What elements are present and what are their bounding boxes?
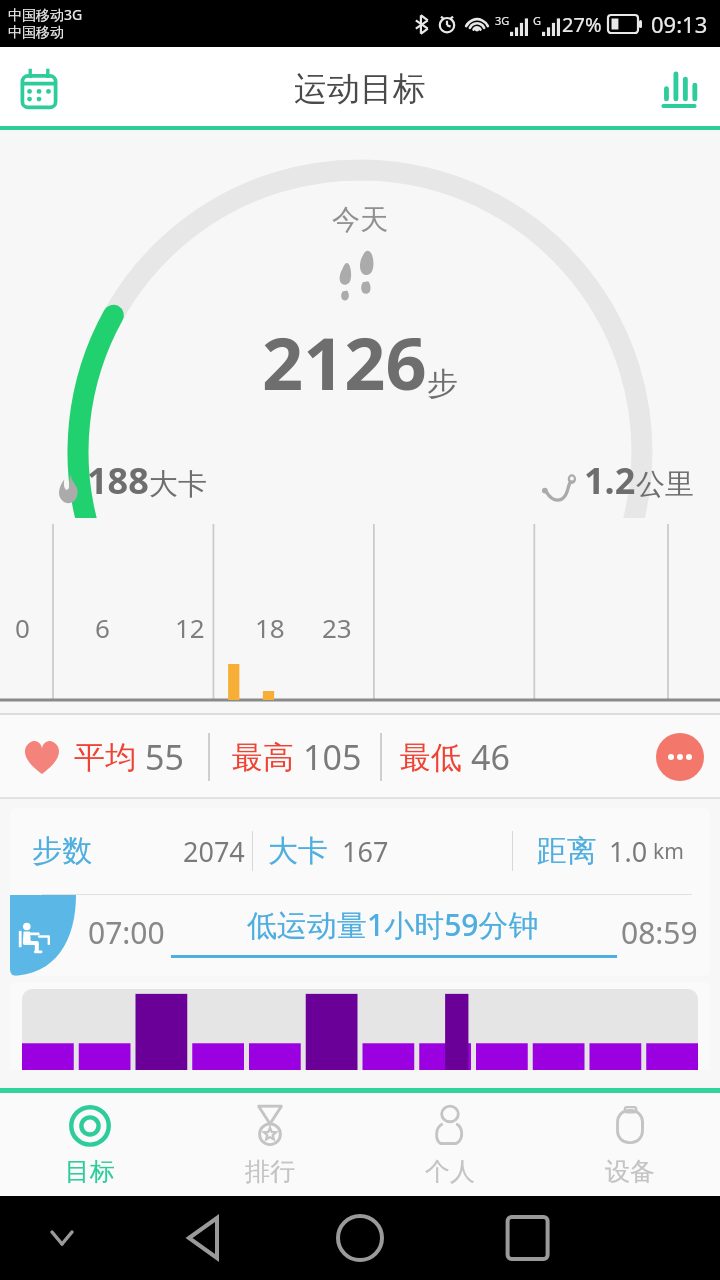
button[interactable]: More options [656,733,704,781]
staticText: 09:13 [651,9,708,39]
staticText: 105 [303,734,362,780]
staticText: 1.0 [609,833,648,870]
button[interactable]: 个人 [360,1093,540,1196]
staticText: 27% [562,11,602,38]
staticText: 188 [87,456,149,505]
button[interactable] [10,982,710,1070]
staticText: 2074 [183,833,245,870]
staticText: 08:59 [621,912,698,953]
staticText: 中国移动3G [8,5,83,24]
staticText: 平均 [74,738,136,777]
button[interactable]: Statistics [648,58,710,120]
staticText: 2126 [262,313,427,411]
staticText: 07:00 [88,912,165,953]
staticText: 18 [255,610,285,645]
staticText: 公里 [636,466,694,503]
staticText: 大卡 [268,832,328,870]
staticText: 46 [471,734,510,780]
staticText: 3G [495,13,510,28]
staticText: 设备 [605,1156,655,1187]
staticText: 目标 [65,1156,115,1187]
staticText: 1.2 [584,456,636,505]
staticText: 今天 [332,202,388,237]
staticText: 步数 [32,832,92,870]
button[interactable]: Calendar [8,58,70,120]
staticText: 167 [342,833,389,870]
staticText: 23 [322,610,352,645]
staticText: 0 [15,610,30,645]
staticText: 步 [427,364,458,403]
staticText: 排行 [245,1156,295,1187]
staticText: 中国移动 [8,24,64,42]
staticText: km [653,837,684,866]
staticText: 运动目标 [294,68,426,110]
staticText: 最高 [232,738,294,777]
staticText: 个人 [425,1156,475,1187]
staticText: 55 [145,734,184,780]
staticText: 最低 [400,738,462,777]
button[interactable]: 目标 [0,1093,180,1196]
staticText: 大卡 [149,466,207,503]
staticText: 6 [95,610,110,645]
button[interactable]: 步数 [10,808,710,976]
staticText: 距离 [537,832,597,870]
button[interactable]: 设备 [540,1093,720,1196]
staticText: G [533,13,542,28]
staticText: 12 [175,610,205,645]
button[interactable]: 排行 [180,1093,360,1196]
staticText: 低运动量1小时59分钟 [247,904,539,945]
